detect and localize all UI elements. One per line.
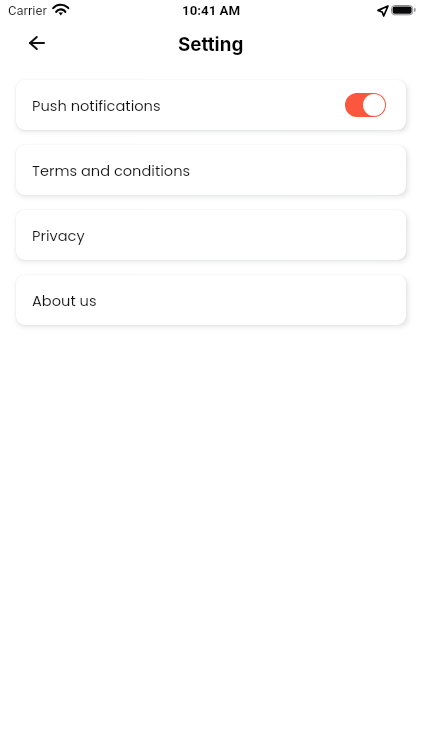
button[interactable]: Push notifications toggle <box>345 93 386 117</box>
button[interactable]: About us <box>16 275 406 325</box>
staticText: Carrier <box>8 3 47 18</box>
staticText: Terms and conditions <box>32 161 191 181</box>
button[interactable]: Push notifications <box>16 80 406 130</box>
staticText: 10:41 AM <box>182 3 241 19</box>
button[interactable]: Back <box>18 25 54 61</box>
button[interactable]: Privacy <box>16 210 406 260</box>
staticText: Setting <box>178 33 244 56</box>
button[interactable]: Terms and conditions <box>16 145 406 195</box>
staticText: About us <box>32 291 97 311</box>
staticText: Push notifications <box>32 96 161 116</box>
staticText: Privacy <box>32 226 85 246</box>
